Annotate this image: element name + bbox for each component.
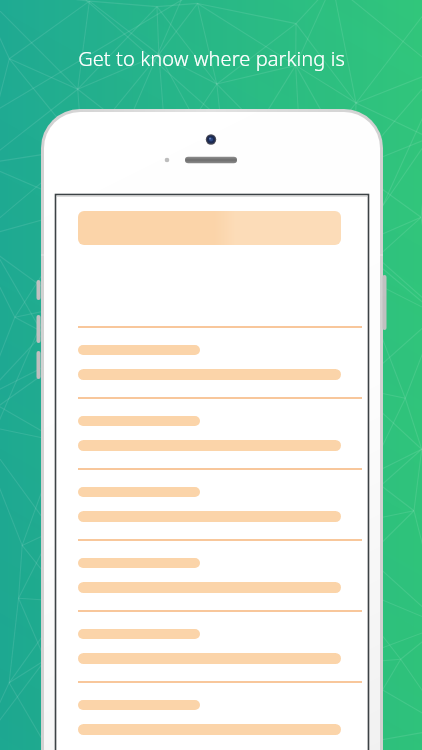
button[interactable]: Parking spot 8 <box>57 469 367 539</box>
button[interactable]: Parking spot 8 <box>57 611 367 681</box>
button[interactable]: Parking spot 8 <box>57 327 367 397</box>
button[interactable]: Parking spot 8 <box>57 540 367 610</box>
staticText: Get to know where parking is <box>78 45 345 72</box>
button[interactable]: Parking spot 8 <box>57 682 367 750</box>
button[interactable]: Search parking <box>78 211 341 245</box>
button[interactable]: Parking spot 8 <box>57 398 367 468</box>
